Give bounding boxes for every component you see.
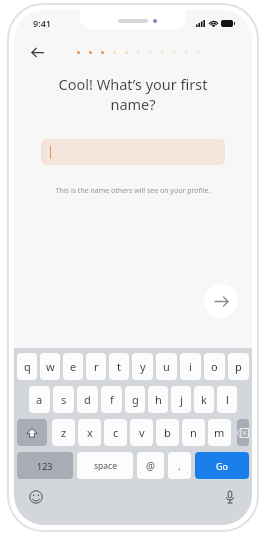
staticText: q <box>24 359 31 374</box>
button[interactable]: z <box>52 419 75 446</box>
button[interactable]: j <box>171 386 191 413</box>
button[interactable]: 123 <box>17 452 73 479</box>
staticText: h <box>155 392 162 407</box>
button[interactable]: b <box>156 419 179 446</box>
button[interactable]: f <box>101 386 122 413</box>
staticText: n <box>190 425 197 440</box>
button[interactable]: g <box>125 386 145 413</box>
button[interactable]: r <box>86 353 106 380</box>
staticText: 9:41 <box>33 17 51 29</box>
button[interactable]: Key <box>17 419 47 446</box>
button[interactable]: s <box>53 386 74 413</box>
staticText: v <box>139 425 145 440</box>
staticText: p <box>235 359 242 374</box>
button[interactable]: m <box>208 419 231 446</box>
button[interactable]: k <box>194 386 214 413</box>
button[interactable]: t <box>109 353 129 380</box>
staticText: z <box>61 425 67 440</box>
staticText: b <box>164 425 171 440</box>
staticText: j <box>180 392 183 407</box>
staticText: f <box>110 392 114 407</box>
button[interactable]: p <box>228 353 249 380</box>
staticText: 123 <box>37 460 53 472</box>
button[interactable]: n <box>182 419 205 446</box>
staticText: c <box>113 425 119 440</box>
button[interactable]: l <box>217 386 237 413</box>
button[interactable]: Key <box>237 419 249 446</box>
staticText: m <box>214 425 225 440</box>
staticText: r <box>94 359 99 374</box>
button[interactable]: d <box>77 386 98 413</box>
staticText: . <box>178 459 181 473</box>
staticText: u <box>163 359 170 374</box>
button[interactable]: u <box>156 353 177 380</box>
button[interactable]: Back <box>27 44 47 60</box>
button[interactable]: Emoji <box>27 488 45 506</box>
staticText: t <box>117 359 121 374</box>
staticText: @ <box>146 459 155 473</box>
button[interactable]: o <box>204 353 225 380</box>
staticText: w <box>46 359 55 374</box>
button[interactable]: x <box>78 419 101 446</box>
button[interactable]: v <box>130 419 153 446</box>
button[interactable] <box>41 139 225 165</box>
button[interactable]: @ <box>137 452 164 479</box>
button[interactable]: Go <box>195 452 249 479</box>
staticText: l <box>226 392 229 407</box>
staticText: o <box>211 359 218 374</box>
staticText: s <box>61 392 67 407</box>
staticText: i <box>189 359 192 374</box>
button[interactable]: Voice input <box>221 488 239 506</box>
staticText: Go <box>216 460 228 472</box>
button[interactable]: . <box>168 452 191 479</box>
staticText: d <box>84 392 91 407</box>
button[interactable]: y <box>132 353 153 380</box>
button[interactable]: w <box>40 353 60 380</box>
button[interactable]: space <box>77 452 133 479</box>
button[interactable]: h <box>148 386 168 413</box>
button[interactable]: e <box>63 353 83 380</box>
staticText: space <box>94 460 117 472</box>
staticText: a <box>36 392 43 407</box>
staticText: Cool! What’s your first name? <box>38 74 228 114</box>
staticText: x <box>87 425 93 440</box>
button[interactable]: a <box>29 386 50 413</box>
button[interactable]: c <box>104 419 127 446</box>
staticText: y <box>140 359 146 374</box>
staticText: This is the name others will see on your… <box>34 186 232 196</box>
button[interactable]: i <box>180 353 201 380</box>
staticText: e <box>70 359 77 374</box>
staticText: k <box>201 392 207 407</box>
button[interactable]: Next <box>204 284 238 318</box>
button[interactable]: q <box>17 353 37 380</box>
staticText: g <box>132 392 139 407</box>
